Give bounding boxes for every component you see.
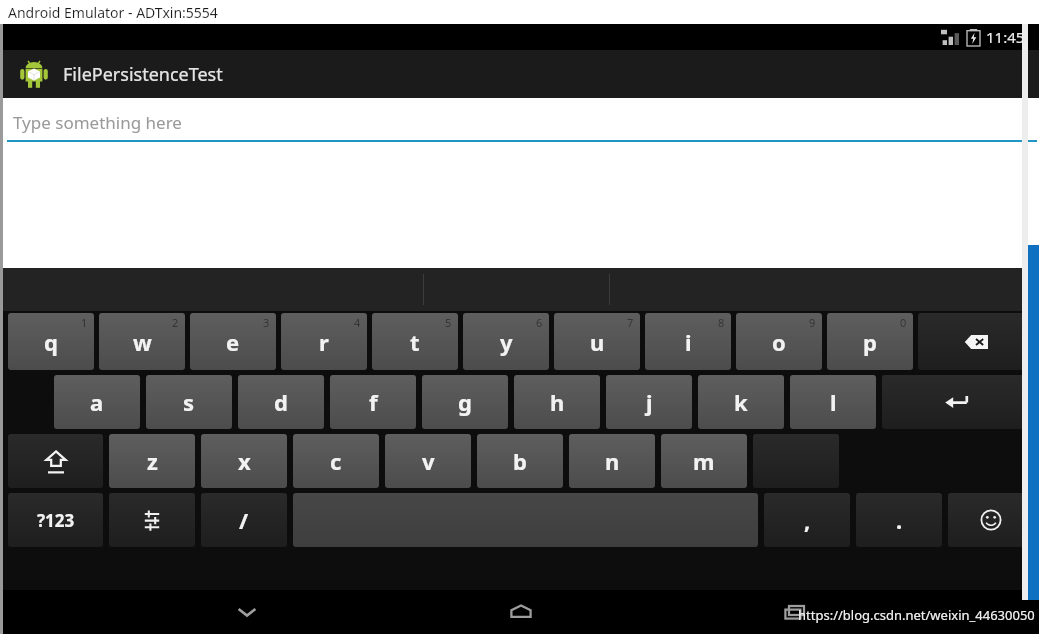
staticText: p — [863, 327, 877, 357]
staticText: v — [422, 446, 435, 476]
button[interactable]: Shift — [8, 434, 103, 488]
button[interactable]: Type something here — [3, 105, 1039, 140]
staticText: 4 — [354, 315, 361, 330]
button[interactable]: i — [645, 313, 731, 370]
button[interactable]: Hide keyboard — [217, 592, 277, 632]
staticText: u — [590, 327, 605, 357]
staticText: m — [693, 446, 715, 476]
staticText: j — [646, 387, 653, 417]
staticText: 11:45 — [986, 27, 1025, 47]
button[interactable]: a — [54, 375, 140, 429]
staticText: ?123 — [37, 509, 75, 532]
staticText: 7 — [627, 315, 634, 330]
button[interactable]: / — [201, 493, 287, 547]
button[interactable]: x — [201, 434, 287, 488]
staticText: FilePersistenceTest — [63, 62, 223, 87]
staticText: c — [330, 446, 342, 476]
button[interactable]: o — [736, 313, 822, 370]
staticText: w — [133, 327, 152, 357]
button[interactable]: m — [661, 434, 747, 488]
button[interactable]: j — [606, 375, 692, 429]
staticText: Type something here — [13, 111, 182, 134]
button[interactable]: z — [109, 434, 195, 488]
button[interactable]: ?123 — [8, 493, 103, 547]
button[interactable]: , — [764, 493, 850, 547]
staticText: 0 — [900, 315, 907, 330]
staticText: q — [44, 327, 58, 357]
staticText: 2 — [172, 315, 179, 330]
staticText: x — [238, 446, 251, 476]
staticText: y — [500, 327, 513, 357]
button[interactable]: w — [99, 313, 185, 370]
button[interactable]: e — [190, 313, 276, 370]
button[interactable]: Recents — [765, 592, 825, 632]
staticText: / — [239, 505, 249, 535]
staticText: g — [458, 387, 472, 417]
staticText: , — [804, 505, 811, 535]
button[interactable]: r — [281, 313, 367, 370]
button[interactable]: . — [856, 493, 942, 547]
staticText: 6 — [536, 315, 543, 330]
button[interactable]: Home — [491, 592, 551, 632]
staticText: n — [605, 446, 620, 476]
staticText: https://blog.csdn.net/weixin_44630050 — [798, 606, 1035, 624]
staticText: 3 — [263, 315, 270, 330]
staticText: h — [550, 387, 565, 417]
staticText: t — [410, 327, 420, 357]
button[interactable]: p — [827, 313, 913, 370]
staticText: d — [274, 387, 288, 417]
staticText: 1 — [81, 315, 88, 330]
button[interactable]: l — [790, 375, 876, 429]
button[interactable]: f — [330, 375, 416, 429]
staticText: 9 — [809, 315, 816, 330]
button[interactable]: q — [8, 313, 94, 370]
staticText: b — [513, 446, 527, 476]
staticText: k — [734, 387, 748, 417]
button[interactable]: y — [463, 313, 549, 370]
staticText: 8 — [718, 315, 725, 330]
staticText: o — [772, 327, 786, 357]
staticText: e — [226, 327, 240, 357]
button[interactable]: h — [514, 375, 600, 429]
staticText: s — [183, 387, 195, 417]
button[interactable]: Enter — [882, 375, 1033, 429]
button[interactable]: n — [569, 434, 655, 488]
staticText: a — [90, 387, 104, 417]
staticText: . — [896, 505, 903, 535]
staticText: z — [147, 446, 158, 476]
staticText: 5 — [445, 315, 452, 330]
staticText: l — [830, 387, 837, 417]
staticText: r — [319, 327, 329, 357]
button[interactable]: Emoji — [948, 493, 1034, 547]
button[interactable]: Input settings — [109, 493, 195, 547]
button[interactable]: Backspace — [918, 313, 1033, 370]
button[interactable]: c — [293, 434, 379, 488]
button[interactable]: g — [422, 375, 508, 429]
staticText: i — [685, 327, 692, 357]
button[interactable]: b — [477, 434, 563, 488]
button[interactable]: d — [238, 375, 324, 429]
button[interactable] — [753, 434, 839, 488]
staticText: Android Emulator - ADTxin:5554 — [8, 3, 218, 22]
button[interactable]: k — [698, 375, 784, 429]
staticText: f — [369, 387, 378, 417]
button[interactable]: t — [372, 313, 458, 370]
button[interactable]: u — [554, 313, 640, 370]
button[interactable]: s — [146, 375, 232, 429]
button[interactable]: v — [385, 434, 471, 488]
